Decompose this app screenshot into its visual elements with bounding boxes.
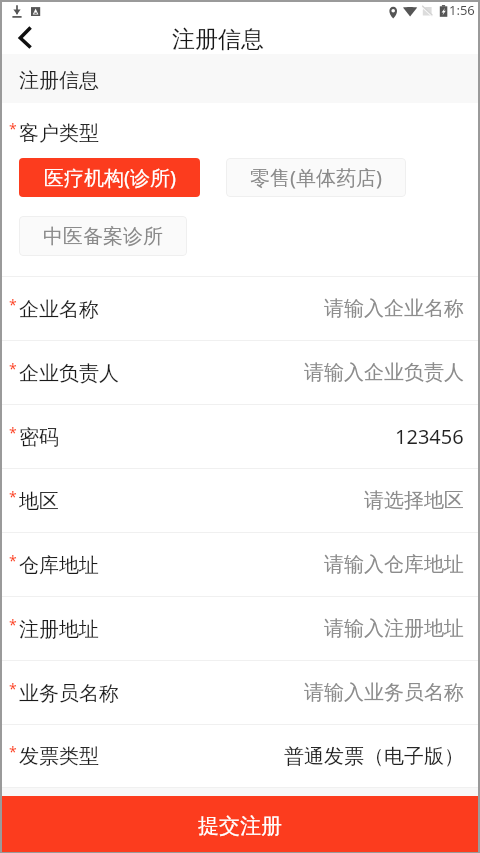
staticText: 普通发票（电子版） [284,744,464,769]
button[interactable]: * [2,277,478,340]
staticText: 医疗机构(诊所) [44,164,176,191]
button[interactable]: 提交注册 [2,796,478,852]
button[interactable]: * [2,661,478,724]
staticText: 仓库地址 [19,553,99,578]
button[interactable]: 医疗机构(诊所) [19,158,200,197]
staticText: * [9,742,17,761]
button[interactable]: * [2,533,478,596]
staticText: * [9,423,17,442]
staticText: 请输入业务员名称 [304,680,464,705]
button[interactable]: * [2,725,478,787]
staticText: 发票类型 [19,744,99,769]
staticText: 1:56 [449,1,475,19]
staticText: 请输入仓库地址 [324,552,464,577]
staticText: 客户类型 [19,121,99,146]
staticText: 密码 [19,425,59,450]
staticText: 123456 [395,423,464,450]
staticText: 地区 [19,489,59,514]
button[interactable]: * [2,597,478,660]
staticText: 业务员名称 [19,681,119,706]
staticText: * [9,359,17,378]
staticText: * [9,119,17,138]
staticText: * [9,615,17,634]
staticText: 注册地址 [19,617,99,642]
staticText: 请选择地区 [364,488,464,513]
staticText: 请输入企业名称 [324,296,464,321]
staticText: 零售(单体药店) [250,164,382,191]
staticText: 请输入企业负责人 [304,360,464,385]
staticText: 请输入注册地址 [324,616,464,641]
button[interactable]: 中医备案诊所 [19,216,187,256]
staticText: * [9,487,17,506]
staticText: 中医备案诊所 [43,224,163,249]
staticText: 企业名称 [19,297,99,322]
staticText: * [9,551,17,570]
button[interactable]: 零售(单体药店) [226,158,406,197]
staticText: 提交注册 [198,813,282,839]
staticText: * [9,679,17,698]
button[interactable]: * [2,341,478,404]
button[interactable]: * [2,405,478,468]
button[interactable]: * [2,469,478,532]
staticText: 注册信息 [19,68,99,93]
staticText: 企业负责人 [19,361,119,386]
staticText: 注册信息 [172,25,264,54]
staticText: * [9,295,17,314]
button[interactable]: Back [2,24,48,54]
